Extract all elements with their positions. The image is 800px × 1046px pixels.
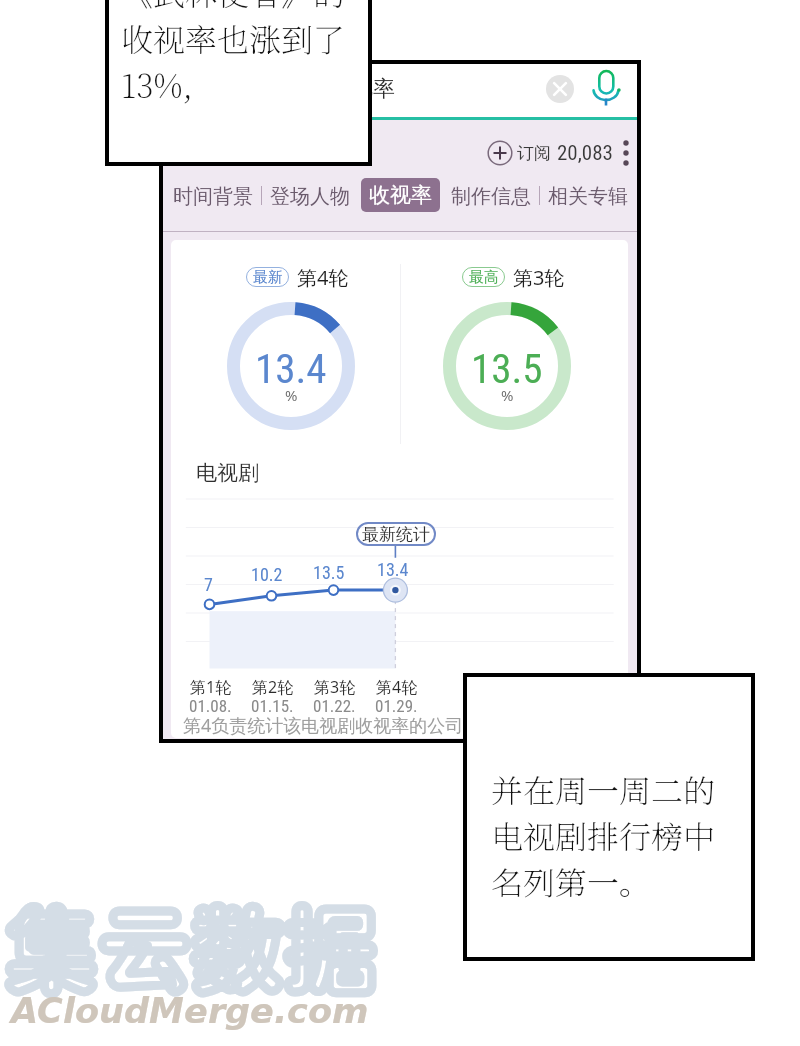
staticText: 13.5 (471, 345, 543, 393)
staticText: 最新 (253, 268, 283, 287)
staticText: 订阅 (517, 143, 551, 164)
staticText: 电视剧 (196, 460, 259, 486)
staticText: 并在周一周二的 (491, 766, 716, 812)
button[interactable]: 登场人物 (268, 178, 352, 212)
button[interactable]: 订阅 (487, 138, 613, 168)
button[interactable]: 收视率 (361, 178, 440, 212)
staticText: 名列第一。 (491, 858, 652, 904)
staticText: 13.4 (377, 559, 409, 580)
staticText: 《武林使者》的 (121, 0, 346, 15)
staticText: 最新统计 (362, 524, 430, 545)
staticText: 武林使者收视率 (241, 75, 395, 103)
staticText: 时间背景 (173, 184, 253, 206)
staticText: 收视率 (369, 182, 432, 208)
staticText: 01.15. (251, 696, 294, 716)
staticText: 13.4 (255, 345, 327, 393)
staticText: 第1轮 (190, 676, 232, 698)
staticText: 7 (204, 574, 213, 595)
staticText: % (285, 385, 298, 405)
button[interactable]: Voice search (592, 68, 622, 108)
staticText: 01.22. (313, 696, 356, 716)
staticText: 01.29. (375, 696, 418, 716)
staticText: 第4负责统计该电视剧收视率的公司为 (183, 713, 482, 738)
staticText: 第4轮 (376, 676, 418, 698)
staticText: 第3轮 (314, 676, 356, 698)
button[interactable]: Clear text (546, 75, 574, 103)
staticText: 第2轮 (252, 676, 294, 698)
button[interactable]: 相关专辑 (546, 178, 630, 212)
staticText: 第4轮 (297, 264, 349, 290)
staticText: 制作信息 (451, 184, 531, 206)
staticText: 最高 (469, 268, 499, 287)
staticText: 电视剧排行榜中 (491, 812, 716, 858)
staticText: % (501, 385, 514, 405)
staticText: 13%, (121, 61, 193, 107)
button[interactable]: More options (616, 136, 636, 170)
staticText: 相关专辑 (548, 184, 628, 206)
staticText: 20,083 (557, 141, 613, 166)
staticText: 收视率也涨到了 (121, 15, 346, 61)
button[interactable]: 制作信息 (449, 178, 533, 212)
staticText: 13.5 (313, 562, 345, 583)
staticText: 第3轮 (513, 264, 565, 290)
button[interactable]: 时间背景 (171, 178, 255, 212)
staticText: 01.08. (189, 696, 232, 716)
staticText: 10.2 (251, 564, 283, 585)
staticText: 登场人物 (270, 184, 350, 206)
